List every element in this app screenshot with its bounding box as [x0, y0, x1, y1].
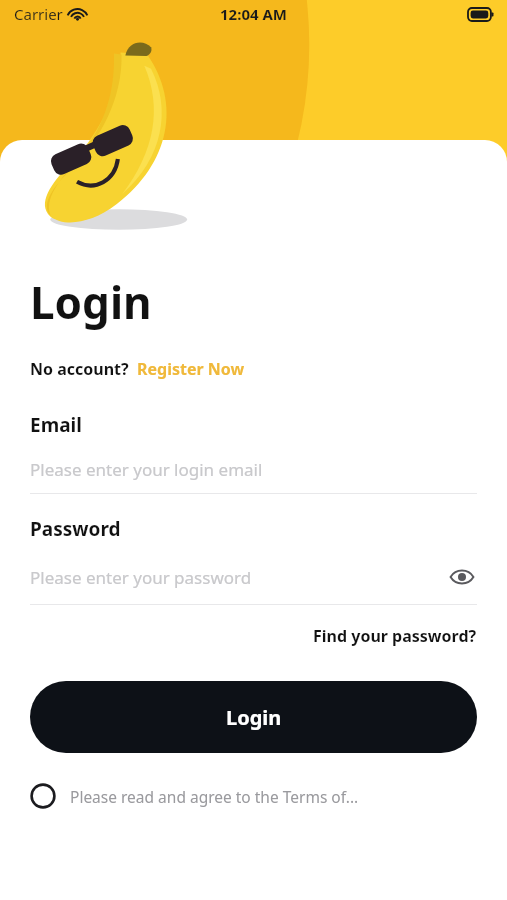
staticText: Please enter your password — [30, 566, 447, 589]
staticText: Find your password? — [313, 625, 477, 647]
staticText: Email — [30, 412, 82, 438]
staticText: Password — [30, 516, 121, 542]
button[interactable]: Find your password? — [30, 625, 477, 647]
button[interactable]: Please enter your login email — [30, 458, 477, 481]
button[interactable]: Register Now — [137, 358, 245, 380]
staticText: Register Now — [137, 358, 245, 380]
button[interactable]: Please read and agree to the Terms of... — [30, 783, 477, 809]
staticText: Login — [226, 704, 282, 731]
button[interactable]: Login — [30, 681, 477, 753]
staticText: Carrier — [14, 4, 63, 24]
staticText: Please read and agree to the Terms of... — [70, 786, 359, 807]
staticText: 12:04 AM — [220, 4, 287, 24]
staticText: No account? — [30, 358, 129, 380]
staticText: Login — [30, 272, 152, 332]
button[interactable]: Please enter your password — [30, 562, 477, 592]
button[interactable]: Show password — [447, 562, 477, 592]
staticText: Please enter your login email — [30, 458, 477, 481]
